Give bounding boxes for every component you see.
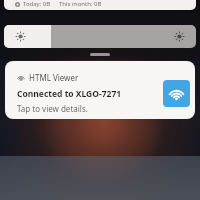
- staticText: Tap to view details.: [17, 103, 88, 114]
- staticText: HTML Viewer: [29, 72, 79, 83]
- button[interactable]: Today: 0B: [4, 0, 196, 10]
- staticText: Today: 0B: [23, 0, 51, 8]
- button[interactable]: Wi-Fi connected: [163, 80, 190, 107]
- button[interactable]: Brightness: [4, 25, 196, 48]
- staticText: Connected to XLGO-7271: [17, 88, 122, 100]
- staticText: This month: 0B: [59, 0, 102, 8]
- button[interactable]: HTML Viewer: [5, 61, 195, 119]
